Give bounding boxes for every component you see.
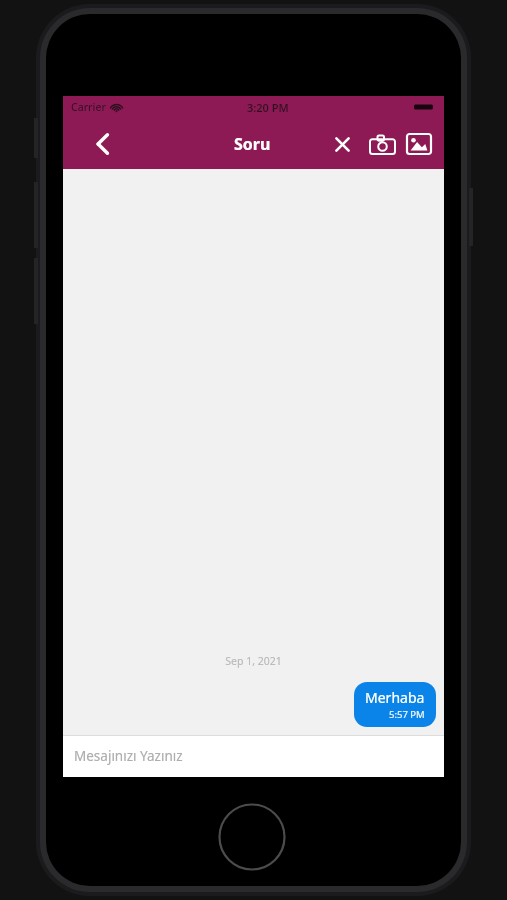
staticText: Merhaba bbox=[365, 688, 425, 707]
staticText: Mesajınızı Yazınız bbox=[74, 747, 183, 765]
staticText: Sep 1, 2021 bbox=[71, 654, 436, 668]
button[interactable]: Take photo bbox=[365, 127, 399, 161]
staticText: Soru bbox=[234, 133, 271, 155]
button[interactable]: Home bbox=[218, 803, 286, 871]
button[interactable]: Close bbox=[326, 128, 358, 160]
button[interactable]: Back bbox=[85, 127, 119, 161]
staticText: 3:20 PM bbox=[247, 100, 289, 115]
staticText: 5:57 PM bbox=[389, 708, 425, 721]
button[interactable]: Merhaba bbox=[354, 682, 436, 727]
staticText: Carrier bbox=[71, 100, 106, 114]
button[interactable]: Choose image bbox=[402, 127, 436, 161]
button[interactable]: Mesajınızı Yazınız bbox=[63, 736, 444, 777]
